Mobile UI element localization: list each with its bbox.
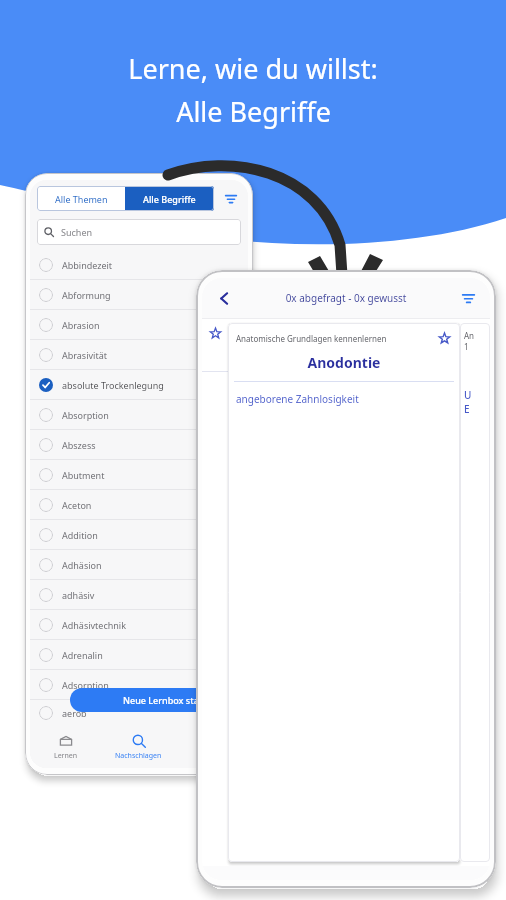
button[interactable]: aerob bbox=[30, 700, 248, 726]
staticText: 1 bbox=[464, 341, 469, 352]
button[interactable]: Back bbox=[212, 286, 236, 310]
staticText: Adrenalin bbox=[62, 649, 103, 661]
staticText: Alle Begriffe bbox=[176, 93, 331, 130]
button[interactable]: Adsorption bbox=[30, 670, 248, 699]
staticText: U bbox=[464, 388, 472, 402]
staticText: Abutment bbox=[62, 469, 105, 481]
button[interactable]: Adhäsion bbox=[30, 550, 248, 579]
staticText: Addition bbox=[62, 529, 98, 541]
button[interactable]: Suchen bbox=[37, 219, 241, 245]
staticText: adhäsiv bbox=[62, 589, 95, 601]
staticText: Abformung bbox=[62, 289, 111, 301]
button[interactable]: Abrasion bbox=[30, 310, 248, 339]
staticText: Abszess bbox=[62, 439, 96, 451]
staticText: Anodontie bbox=[228, 353, 460, 372]
button[interactable]: absolute Trockenlegung bbox=[30, 370, 248, 399]
button[interactable]: Filter bbox=[221, 189, 241, 209]
staticText: An bbox=[464, 330, 475, 341]
button[interactable]: Abbindezeit bbox=[30, 250, 248, 279]
button[interactable]: Alle Themen bbox=[37, 186, 125, 211]
button[interactable]: Nachschlagen bbox=[102, 726, 175, 768]
staticText: Adhäsion bbox=[62, 559, 102, 571]
staticText: Aceton bbox=[62, 499, 92, 511]
staticText: Alle Begriffe bbox=[143, 193, 196, 205]
staticText: Nachschlagen bbox=[115, 751, 162, 761]
staticText: Abrasion bbox=[62, 319, 100, 331]
button[interactable]: Abrasivität bbox=[30, 340, 248, 369]
staticText: Neue Lernbox starten bbox=[123, 694, 217, 706]
staticText: aerob bbox=[62, 707, 87, 719]
staticText: Adsorption bbox=[62, 679, 109, 691]
staticText: Abrasivität bbox=[62, 349, 107, 361]
button[interactable]: Neue Lernbox starten bbox=[70, 688, 253, 712]
staticText: Suchen bbox=[61, 226, 93, 238]
staticText: E bbox=[464, 402, 470, 416]
staticText: Adhäsivtechnik bbox=[62, 619, 126, 631]
button[interactable]: Addition bbox=[30, 520, 248, 549]
button[interactable]: Alle Begriffe bbox=[125, 186, 214, 211]
button[interactable]: Adrenalin bbox=[30, 640, 248, 669]
button[interactable]: Abszess bbox=[30, 430, 248, 459]
button[interactable]: Filter bbox=[456, 286, 480, 310]
staticText: angeborene Zahnlosigkeit bbox=[236, 392, 359, 406]
button[interactable]: Adhäsivtechnik bbox=[30, 610, 248, 639]
button[interactable]: Aceton bbox=[30, 490, 248, 519]
staticText: Abbindezeit bbox=[62, 259, 113, 271]
staticText: Absorption bbox=[62, 409, 109, 421]
staticText: 0x abgefragt - 0x gewusst bbox=[236, 291, 456, 305]
staticText: Lernen bbox=[54, 751, 78, 761]
staticText: Alle Themen bbox=[55, 193, 108, 205]
button[interactable]: adhäsiv bbox=[30, 580, 248, 609]
staticText: Lerne, wie du willst: bbox=[128, 50, 378, 87]
button[interactable]: Absorption bbox=[30, 400, 248, 429]
button[interactable]: Anatomische Grundlagen kennenlernen bbox=[228, 323, 460, 862]
button[interactable]: Favorite bbox=[436, 330, 452, 346]
button[interactable]: Favorite bbox=[207, 325, 223, 341]
button[interactable]: Abformung bbox=[30, 280, 248, 309]
button[interactable]: Abutment bbox=[30, 460, 248, 489]
staticText: absolute Trockenlegung bbox=[62, 379, 164, 391]
button[interactable]: Lernen bbox=[30, 726, 102, 768]
button[interactable]: Eigene bbox=[175, 726, 248, 768]
button[interactable]: An bbox=[460, 323, 490, 862]
staticText: Anatomische Grundlagen kennenlernen bbox=[236, 333, 432, 344]
